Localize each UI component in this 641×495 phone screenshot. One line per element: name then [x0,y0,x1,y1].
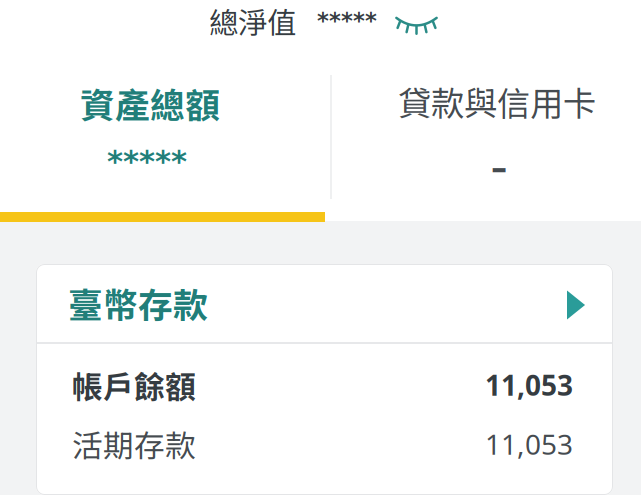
staticText: 貸款與信用卡 [398,77,596,125]
staticText: 11,053 [485,366,573,404]
button[interactable]: 資產總額 [0,78,300,179]
staticText: 臺幣存款 [68,278,208,328]
staticText: 活期存款 [72,422,196,466]
button[interactable]: 總淨值 [209,0,438,43]
staticText: ***** [317,8,377,34]
staticText: 總淨值 [209,0,296,42]
button[interactable]: 貸款與信用卡 [347,77,641,200]
staticText: 資產總額 [80,78,220,128]
staticText: - [490,127,507,200]
button[interactable]: 臺幣存款 [36,264,613,342]
staticText: ***** [107,143,187,179]
staticText: 帳戶餘額 [72,363,196,407]
staticText: 11,053 [485,425,573,463]
